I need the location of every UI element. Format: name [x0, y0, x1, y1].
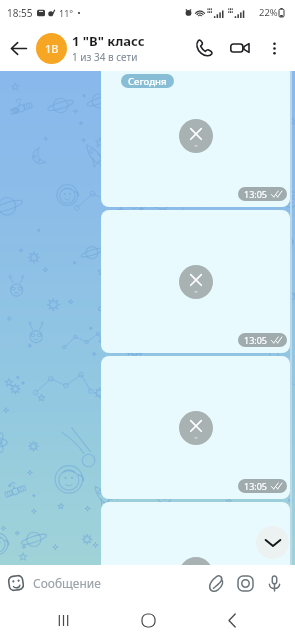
- staticText: 22%: [259, 6, 278, 19]
- staticText: 13:05: [244, 188, 268, 200]
- button[interactable]: Video call: [225, 33, 255, 63]
- button[interactable]: Stickers: [0, 567, 32, 599]
- button[interactable]: Scroll to bottom: [256, 526, 289, 559]
- staticText: 13:05: [244, 334, 268, 346]
- button[interactable]: 13:05: [101, 502, 290, 565]
- button[interactable]: Attach: [202, 569, 230, 597]
- staticText: 11°: [59, 7, 74, 19]
- button[interactable]: 13:05: [101, 71, 290, 207]
- staticText: 13:05: [244, 480, 268, 492]
- button[interactable]: 13:05: [101, 356, 290, 499]
- button[interactable]: Recents: [41, 600, 85, 640]
- staticText: 18:55: [7, 6, 33, 20]
- button[interactable]: Home: [126, 600, 170, 640]
- button[interactable]: Back: [0, 30, 36, 66]
- button[interactable]: 1В: [36, 25, 189, 71]
- staticText: Сегодня: [128, 75, 167, 88]
- staticText: 1 из 34 в сети: [72, 50, 138, 64]
- button[interactable]: More options: [261, 35, 287, 61]
- button[interactable]: Camera: [231, 569, 259, 597]
- staticText: 1 "В" класс: [72, 32, 145, 50]
- staticText: Сообщение: [33, 575, 101, 591]
- staticText: 1В: [45, 41, 59, 56]
- button[interactable]: Voice message: [260, 569, 288, 597]
- button[interactable]: Call: [189, 33, 219, 63]
- button[interactable]: 13:05: [101, 210, 290, 353]
- button[interactable]: Back: [210, 600, 254, 640]
- button[interactable]: Сегодня: [121, 74, 174, 88]
